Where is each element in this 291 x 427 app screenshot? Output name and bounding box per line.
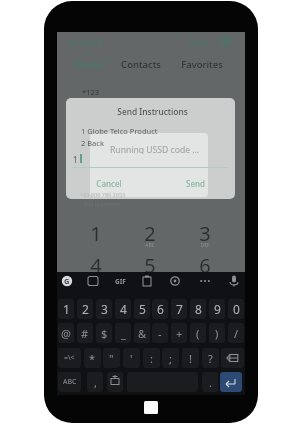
button[interactable]: Record bbox=[218, 33, 234, 49]
staticText: _ bbox=[121, 326, 126, 341]
button[interactable]: =\< bbox=[58, 348, 81, 368]
button[interactable]: 0 bbox=[228, 299, 244, 319]
staticText: Send bbox=[186, 178, 205, 189]
button[interactable]: 3 bbox=[96, 299, 112, 319]
button[interactable]: 4 bbox=[115, 299, 131, 319]
staticText: 1 Globe Telco Product bbox=[81, 126, 158, 135]
staticText: DEF bbox=[200, 242, 210, 249]
staticText: Phone bbox=[74, 58, 103, 71]
staticText: , bbox=[94, 375, 97, 390]
button[interactable]: : bbox=[143, 348, 160, 368]
staticText: 8 bbox=[195, 301, 202, 317]
button[interactable]: More options bbox=[198, 274, 212, 288]
staticText: ABC bbox=[145, 242, 155, 249]
button[interactable]: 8 bbox=[190, 299, 206, 319]
button[interactable]: # bbox=[77, 323, 93, 343]
staticText: ? bbox=[208, 351, 213, 366]
button[interactable]: Clipboard bbox=[140, 274, 154, 288]
button[interactable]: ABC bbox=[58, 372, 81, 392]
staticText: JKL bbox=[146, 274, 154, 281]
button[interactable]: " bbox=[103, 348, 120, 368]
button[interactable]: $ bbox=[96, 323, 112, 343]
button[interactable]: . bbox=[202, 372, 218, 392]
staticText: G bbox=[64, 276, 70, 286]
button[interactable]: Favorites bbox=[178, 56, 226, 72]
button[interactable]: Stickers bbox=[86, 274, 100, 288]
button[interactable]: 1 bbox=[79, 219, 113, 247]
staticText: " bbox=[109, 351, 114, 366]
button[interactable]: 6 bbox=[152, 299, 168, 319]
button[interactable]: ( bbox=[190, 323, 206, 343]
staticText: * bbox=[89, 351, 96, 366]
staticText: 9 bbox=[214, 301, 221, 317]
button[interactable]: - bbox=[152, 323, 168, 343]
button[interactable]: + bbox=[171, 323, 187, 343]
staticText: ABC bbox=[63, 377, 77, 387]
staticText: : bbox=[150, 351, 153, 366]
button[interactable]: / bbox=[228, 323, 244, 343]
staticText: GHI bbox=[91, 274, 101, 281]
staticText: 7 bbox=[176, 301, 183, 317]
button[interactable]: 3 bbox=[188, 219, 222, 247]
staticText: Running USSD code ... bbox=[110, 144, 200, 154]
button[interactable]: 2 bbox=[133, 219, 167, 247]
button[interactable]: & bbox=[134, 323, 150, 343]
button[interactable]: Home bbox=[144, 401, 158, 414]
staticText: Contacts bbox=[121, 58, 161, 71]
button[interactable]: * bbox=[84, 348, 101, 368]
staticText: 1 bbox=[73, 154, 78, 164]
button[interactable]: Enter bbox=[220, 372, 242, 392]
staticText: + bbox=[176, 326, 183, 341]
staticText: 0 bbox=[233, 301, 240, 317]
staticText: 4 bbox=[120, 301, 127, 317]
button[interactable]: Cancel bbox=[92, 177, 126, 189]
staticText: ( bbox=[196, 326, 200, 341]
button[interactable]: _ bbox=[115, 323, 131, 343]
staticText: ' bbox=[130, 351, 133, 366]
staticText: Select bbox=[189, 37, 209, 47]
button[interactable]: ; bbox=[162, 348, 179, 368]
staticText: =\< bbox=[64, 353, 75, 363]
staticText: 3 bbox=[199, 220, 211, 247]
button[interactable]: Change keyboard bbox=[107, 372, 123, 392]
button[interactable]: Google bbox=[60, 274, 74, 288]
button[interactable]: Contacts bbox=[119, 56, 163, 72]
button[interactable]: 4 bbox=[79, 251, 113, 279]
button[interactable]: Send bbox=[182, 177, 208, 189]
button[interactable]: 1 bbox=[58, 299, 74, 319]
button[interactable]: Voice input bbox=[227, 274, 241, 288]
button[interactable]: Phone bbox=[70, 56, 106, 72]
staticText: 1 bbox=[90, 220, 102, 247]
staticText: All calls ▾ bbox=[69, 37, 101, 47]
staticText: $ bbox=[101, 326, 108, 341]
staticText: ) bbox=[215, 326, 219, 341]
button[interactable]: 7 bbox=[171, 299, 187, 319]
staticText: 1 bbox=[63, 301, 70, 317]
button[interactable]: Backspace bbox=[221, 348, 244, 368]
staticText: *123 bbox=[82, 87, 100, 97]
staticText: 2 Back bbox=[81, 138, 104, 147]
staticText: 2 bbox=[82, 301, 89, 317]
button[interactable]: 5 bbox=[134, 299, 150, 319]
button[interactable]: 6 bbox=[188, 251, 222, 279]
button[interactable]: , bbox=[87, 372, 103, 392]
button[interactable]: ) bbox=[209, 323, 225, 343]
button[interactable]: 2 bbox=[77, 299, 93, 319]
staticText: Favorites bbox=[181, 58, 223, 71]
staticText: 3 bbox=[101, 301, 108, 317]
button[interactable]: ? bbox=[202, 348, 219, 368]
staticText: GIF bbox=[115, 277, 126, 286]
staticText: # bbox=[81, 326, 89, 341]
button[interactable]: ' bbox=[123, 348, 140, 368]
button[interactable]: ! bbox=[182, 348, 199, 368]
button[interactable]: @ bbox=[58, 323, 74, 343]
staticText: 5 bbox=[139, 301, 146, 317]
button[interactable]: Settings bbox=[168, 274, 182, 288]
staticText: - bbox=[158, 326, 162, 341]
staticText: 6 bbox=[157, 301, 164, 317]
staticText: / bbox=[234, 326, 239, 341]
button[interactable]: 5 bbox=[133, 251, 167, 279]
button[interactable]: 9 bbox=[209, 299, 225, 319]
